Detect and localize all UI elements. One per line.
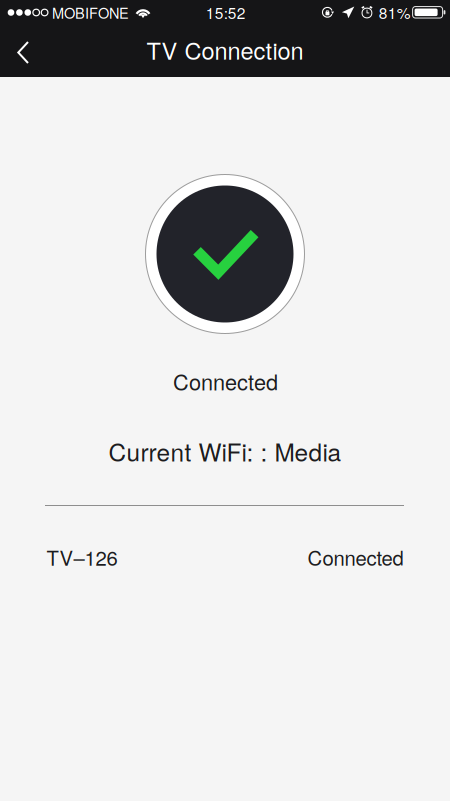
staticText: 81% (379, 1, 411, 23)
staticText: 15:52 (206, 1, 246, 23)
staticText: Connected (173, 365, 278, 396)
staticText: MOBIFONE (52, 2, 129, 23)
staticText: TV–126 (46, 542, 117, 571)
staticText: Current WiFi: : Media (108, 433, 341, 468)
staticText: TV Connection (146, 33, 303, 66)
button[interactable]: Back (0, 28, 46, 77)
staticText: Connected (307, 542, 403, 571)
